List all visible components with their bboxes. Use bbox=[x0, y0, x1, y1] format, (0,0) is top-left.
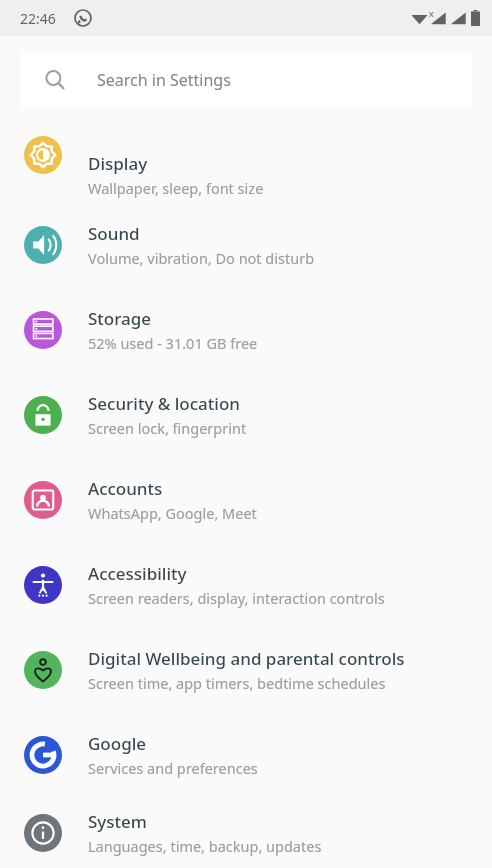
staticText: Wallpaper, sleep, font size bbox=[88, 178, 264, 198]
button[interactable]: Security & location bbox=[0, 372, 492, 457]
staticText: Security & location bbox=[88, 392, 240, 415]
button[interactable]: Digital Wellbeing and parental controls bbox=[0, 627, 492, 712]
staticText: Screen lock, fingerprint bbox=[88, 418, 247, 438]
staticText: x bbox=[429, 7, 434, 19]
staticText: Storage bbox=[88, 307, 152, 330]
staticText: Services and preferences bbox=[88, 758, 258, 778]
staticText: Google bbox=[88, 732, 147, 755]
button[interactable]: Sound bbox=[0, 202, 492, 287]
staticText: Screen time, app timers, bedtime schedul… bbox=[88, 673, 386, 693]
staticText: 52% used - 31.01 GB free bbox=[88, 333, 258, 353]
button[interactable]: Display bbox=[0, 124, 492, 202]
button[interactable]: System bbox=[0, 797, 492, 868]
staticText: 22:46 bbox=[20, 9, 56, 28]
button[interactable]: Search in Settings bbox=[20, 52, 472, 108]
staticText: Digital Wellbeing and parental controls bbox=[88, 647, 405, 670]
staticText: Languages, time, backup, updates bbox=[88, 836, 322, 856]
button[interactable]: Accessibility bbox=[0, 542, 492, 627]
staticText: Search in Settings bbox=[97, 69, 231, 91]
button[interactable]: Google bbox=[0, 712, 492, 797]
staticText: Sound bbox=[88, 222, 140, 245]
staticText: Accessibility bbox=[88, 562, 187, 585]
staticText: Screen readers, display, interaction con… bbox=[88, 588, 385, 608]
staticText: WhatsApp, Google, Meet bbox=[88, 503, 257, 523]
staticText: System bbox=[88, 810, 147, 833]
staticText: Display bbox=[88, 152, 148, 175]
staticText: Accounts bbox=[88, 477, 163, 500]
staticText: Volume, vibration, Do not disturb bbox=[88, 248, 315, 268]
button[interactable]: Accounts bbox=[0, 457, 492, 542]
button[interactable]: Storage bbox=[0, 287, 492, 372]
